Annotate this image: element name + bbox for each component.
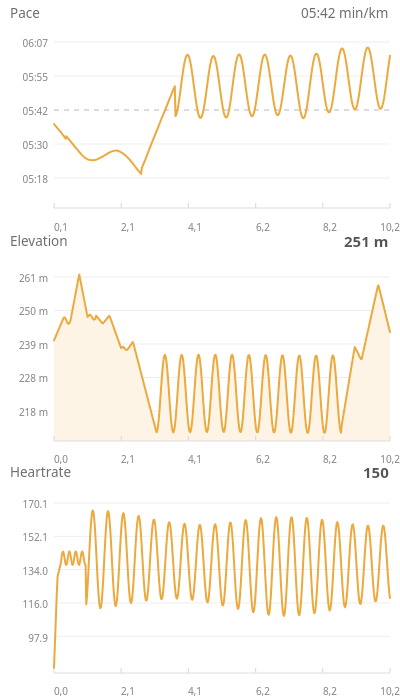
button[interactable]: Heartrate: [0, 462, 400, 482]
staticText: 4,1: [0, 220, 202, 234]
staticText: 8,2: [0, 684, 337, 696]
staticText: 116.0: [0, 597, 48, 611]
staticText: 0,1: [0, 220, 68, 234]
staticText: 152.1: [0, 530, 48, 544]
staticText: 2,1: [0, 684, 135, 696]
button[interactable]: Elevation: [0, 231, 400, 251]
staticText: 6,2: [0, 452, 270, 466]
staticText: 239 m: [0, 338, 48, 352]
staticText: 10,2: [0, 452, 400, 466]
staticText: Pace: [10, 4, 40, 22]
staticText: 06:07: [0, 36, 48, 50]
staticText: 0,0: [0, 684, 68, 696]
staticText: 6,2: [0, 220, 270, 234]
button[interactable]: Pace: [0, 4, 400, 22]
staticText: 97.9: [0, 631, 48, 645]
staticText: 8,2: [0, 220, 337, 234]
staticText: 10,2: [0, 220, 400, 234]
staticText: 2,1: [0, 220, 135, 234]
staticText: 4,1: [0, 452, 202, 466]
staticText: 170.1: [0, 497, 48, 511]
staticText: 05:42 min/km: [301, 4, 389, 22]
staticText: 218 m: [0, 405, 48, 419]
staticText: 6,2: [0, 684, 270, 696]
staticText: 134.0: [0, 564, 48, 578]
staticText: 8,2: [0, 452, 337, 466]
staticText: Elevation: [10, 232, 68, 250]
staticText: 05:42: [0, 104, 48, 118]
staticText: 228 m: [0, 371, 48, 385]
staticText: 250 m: [0, 304, 48, 318]
staticText: 150: [363, 462, 389, 482]
staticText: 251 m: [344, 231, 389, 251]
staticText: 2,1: [0, 452, 135, 466]
staticText: 261 m: [0, 271, 48, 285]
staticText: 05:30: [0, 138, 48, 152]
staticText: 05:55: [0, 70, 48, 84]
staticText: 10,2: [0, 684, 400, 696]
staticText: 0,0: [0, 452, 68, 466]
staticText: 4,1: [0, 684, 202, 696]
staticText: Heartrate: [10, 463, 72, 481]
staticText: 05:18: [0, 172, 48, 186]
